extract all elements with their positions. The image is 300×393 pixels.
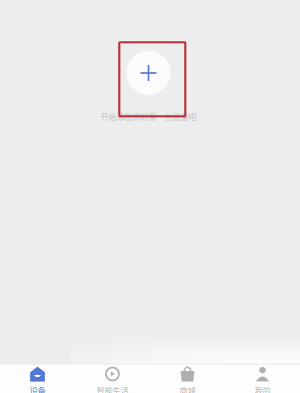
staticText: 智能生活 <box>96 384 128 393</box>
staticText: 我的 <box>254 384 270 393</box>
staticText: 开始添加你的第一台设备吧 <box>100 110 196 122</box>
button[interactable]: 设备 <box>0 361 75 393</box>
button[interactable]: 我的 <box>225 361 300 393</box>
staticText: 设备 <box>29 384 45 393</box>
button[interactable]: 智能生活 <box>75 361 150 393</box>
staticText: 商城 <box>179 384 195 393</box>
button[interactable]: Add device <box>126 51 170 95</box>
button[interactable]: 商城 <box>150 361 225 393</box>
